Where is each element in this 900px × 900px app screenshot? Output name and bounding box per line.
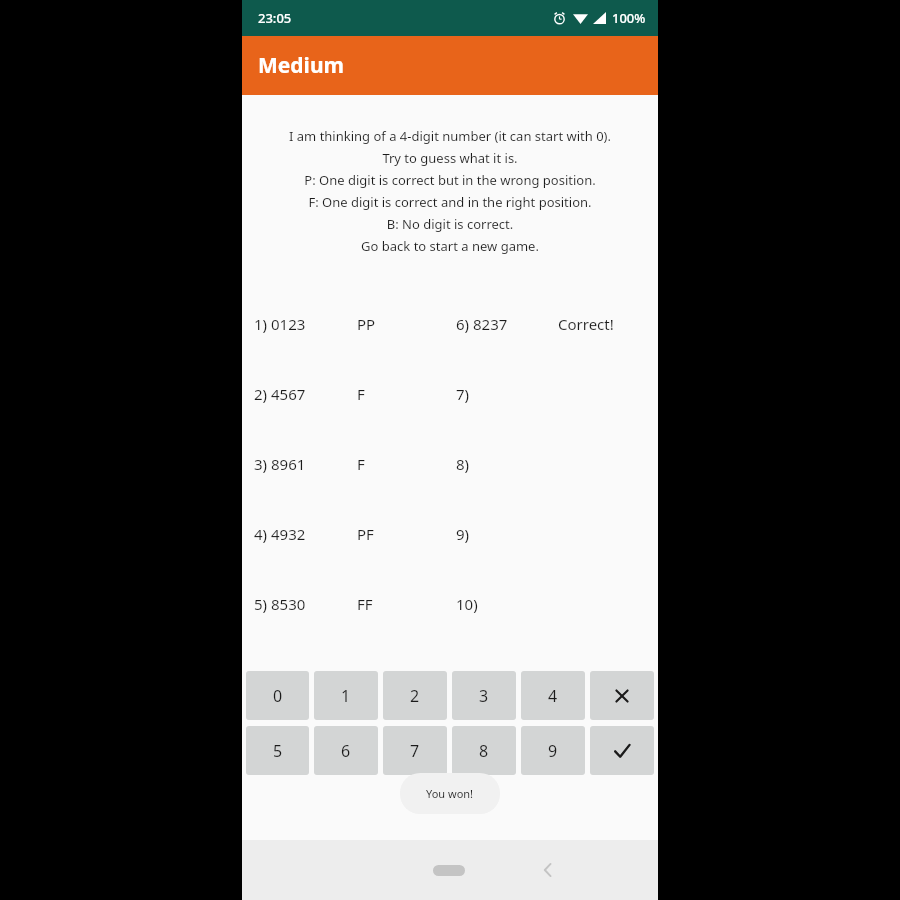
button[interactable]: Back [530,852,566,888]
button[interactable]: 1 [314,671,378,720]
staticText: 2 [410,685,420,707]
staticText: Go back to start a new game. [250,237,650,255]
button[interactable]: 7 [383,726,447,775]
button[interactable]: 4 [521,671,585,720]
button[interactable]: 5 [246,726,309,775]
staticText: F: One digit is correct and in the right… [250,193,650,211]
staticText: Medium [258,51,345,80]
button[interactable]: 9 [521,726,585,775]
staticText: 4) 4932 [254,524,306,544]
button[interactable]: Delete [590,671,654,720]
staticText: 1 [341,685,351,707]
staticText: 100% [612,9,646,27]
button[interactable]: Home [433,865,465,876]
staticText: 5 [273,740,283,762]
staticText: F [357,384,365,404]
staticText: F [357,454,365,474]
staticText: 9 [548,740,558,762]
staticText: 3 [479,685,489,707]
staticText: 4 [548,685,558,707]
staticText: Try to guess what it is. [250,149,650,167]
button[interactable]: 2 [383,671,447,720]
staticText: 0 [273,685,283,707]
staticText: 23:05 [258,9,292,27]
button[interactable]: 3 [452,671,516,720]
staticText: 8) [456,454,470,474]
staticText: FF [357,594,373,614]
staticText: PP [357,314,376,334]
staticText: 6 [341,740,351,762]
staticText: I am thinking of a 4-digit number (it ca… [250,127,650,145]
staticText: 8 [479,740,489,762]
staticText: 2) 4567 [254,384,306,404]
button[interactable]: 6 [314,726,378,775]
staticText: 7 [410,740,420,762]
staticText: 6) 8237 [456,314,508,334]
staticText: PF [357,524,374,544]
button[interactable]: 0 [246,671,309,720]
staticText: You won! [426,786,474,801]
staticText: 5) 8530 [254,594,306,614]
staticText: 9) [456,524,470,544]
staticText: 3) 8961 [254,454,306,474]
staticText: B: No digit is correct. [250,215,650,233]
staticText: Correct! [558,314,614,334]
staticText: 10) [456,594,478,614]
staticText: P: One digit is correct but in the wrong… [250,171,650,189]
staticText: 1) 0123 [254,314,306,334]
button[interactable]: Submit guess [590,726,654,775]
staticText: 7) [456,384,470,404]
button[interactable]: 8 [452,726,516,775]
